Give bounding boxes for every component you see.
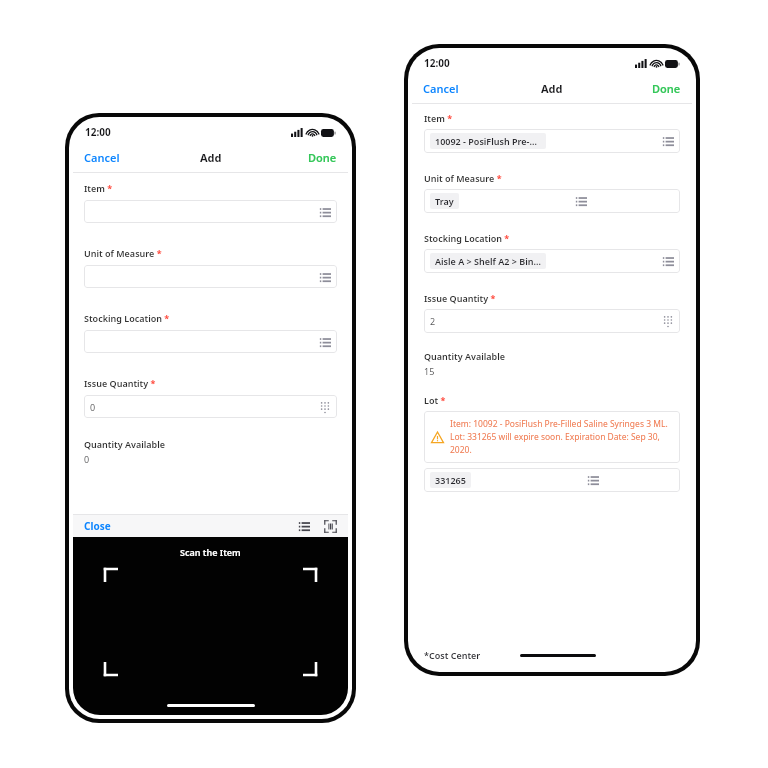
button[interactable]	[84, 330, 337, 353]
staticText: Item *	[424, 112, 453, 124]
staticText: 331265	[435, 474, 466, 486]
button[interactable]: Cancel	[73, 146, 131, 169]
button[interactable]: Done	[297, 146, 348, 169]
button[interactable]: Close	[73, 516, 122, 536]
button[interactable]	[84, 265, 337, 288]
staticText: Lot *	[424, 394, 446, 406]
button[interactable]: Tray	[424, 189, 680, 213]
staticText: Scan the Item	[180, 546, 241, 558]
staticText: Aisle A > Shelf A2 > Bin A202	[435, 255, 541, 267]
staticText: 2	[430, 315, 662, 327]
staticText: Cancel	[423, 81, 459, 96]
staticText: *Cost Center	[424, 649, 481, 661]
staticText: 0	[90, 401, 319, 413]
button[interactable]: Aisle A > Shelf A2 > Bin A202	[424, 249, 680, 273]
staticText: Item: 10092 - PosiFlush Pre-Filled Salin…	[450, 418, 673, 456]
staticText: Stocking Location *	[424, 232, 510, 244]
staticText: Quantity Available	[84, 438, 166, 450]
button[interactable]	[84, 200, 337, 223]
staticText: 12:00	[424, 56, 450, 70]
staticText: Item *	[84, 182, 113, 194]
staticText: Done	[308, 150, 337, 165]
staticText: 15	[424, 365, 435, 377]
staticText: Issue Quantity *	[424, 292, 496, 304]
staticText: Cancel	[84, 150, 120, 165]
button[interactable]: 2	[424, 309, 680, 333]
staticText: Issue Quantity *	[84, 377, 156, 389]
staticText: Add	[541, 81, 563, 96]
staticText: Done	[652, 81, 681, 96]
staticText: Add	[200, 150, 222, 165]
staticText: Tray	[435, 195, 454, 207]
button[interactable]: Scan barcode	[319, 515, 348, 537]
staticText: Quantity Available	[424, 350, 506, 362]
staticText: Unit of Measure *	[84, 247, 162, 259]
button[interactable]: Done	[641, 77, 692, 100]
button[interactable]: 0	[84, 395, 337, 418]
button[interactable]: Manual list entry	[293, 515, 315, 537]
button[interactable]: Cancel	[412, 77, 470, 100]
staticText: Unit of Measure *	[424, 172, 502, 184]
staticText: 12:00	[85, 125, 111, 139]
staticText: Stocking Location *	[84, 312, 170, 324]
staticText: Close	[84, 519, 111, 533]
staticText: 0	[84, 453, 90, 465]
staticText: 10092 - PosiFlush Pre-Filled Saline Syr.…	[435, 135, 541, 147]
button[interactable]: 331265	[424, 468, 680, 492]
button[interactable]: 10092 - PosiFlush Pre-Filled Saline Syr.…	[424, 129, 680, 153]
